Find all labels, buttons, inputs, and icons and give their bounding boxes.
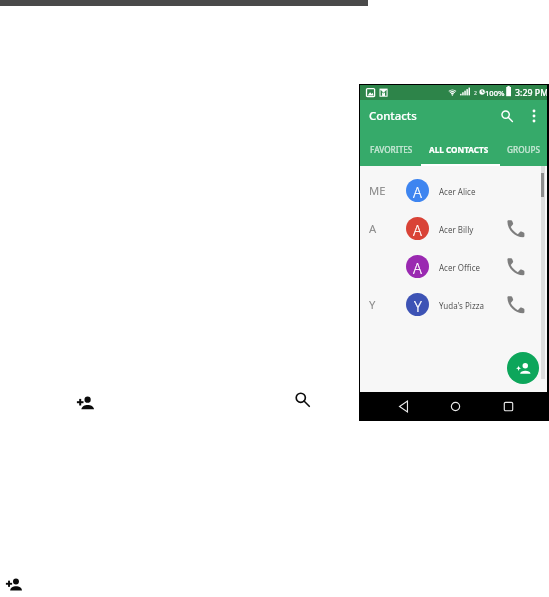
staticText: Acer Billy [439,224,474,235]
staticText: Acer Alice [439,186,476,197]
staticText: Y [369,297,376,312]
button[interactable]: A [360,247,548,285]
button[interactable]: Back [388,392,418,420]
staticText: A [413,258,422,278]
staticText: A [369,221,377,236]
button[interactable]: Add contact [507,352,539,384]
button[interactable]: FAVORITES [358,138,424,166]
button[interactable]: Call Acer Billy [500,213,530,243]
staticText: Yuda's Pizza [439,300,484,311]
button[interactable]: Call Acer Office [500,251,530,281]
button[interactable]: Search [295,392,310,407]
staticText: GROUPS [507,144,541,155]
staticText: FAVORITES [370,144,413,155]
staticText: ME [369,183,386,198]
button[interactable]: Recent apps [493,392,523,420]
button[interactable]: A [360,209,548,247]
staticText: 3:29 PM [515,87,549,99]
staticText: Acer Office [439,262,481,273]
button[interactable]: Add contact [6,577,22,591]
button[interactable]: Call Yuda's Pizza [500,289,530,319]
staticText: A [413,220,422,240]
button[interactable]: More options [522,104,546,128]
button[interactable]: Add contact [77,395,94,410]
staticText: Contacts [369,108,417,124]
staticText: ALL CONTACTS [429,144,489,155]
staticText: 2 [474,90,477,97]
staticText: 100% [485,88,505,98]
button[interactable]: ALL CONTACTS [426,138,492,166]
staticText: Y [414,296,422,316]
button[interactable]: Search [495,104,519,128]
staticText: A [413,182,422,202]
button[interactable]: Y [360,285,548,323]
button[interactable]: ME [360,171,548,209]
button[interactable]: Home [440,392,470,420]
button[interactable]: GROUPS [491,138,549,166]
